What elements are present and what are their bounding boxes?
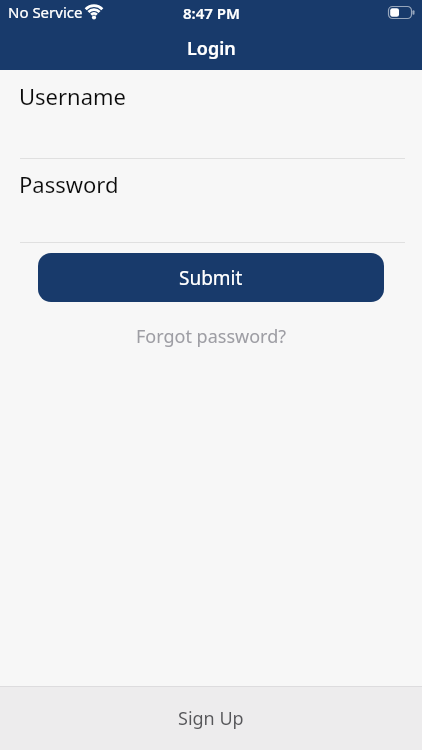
staticText: No Service — [8, 2, 83, 22]
staticText: Login — [187, 36, 236, 61]
button[interactable] — [0, 159, 422, 243]
staticText: Username — [19, 81, 127, 111]
staticText: Submit — [179, 265, 243, 291]
button[interactable]: Sign Up — [0, 686, 422, 750]
staticText: 8:47 PM — [183, 3, 240, 23]
staticText: Forgot password? — [136, 324, 287, 349]
button[interactable]: Forgot password? — [136, 324, 287, 349]
staticText: Sign Up — [178, 706, 244, 731]
button[interactable]: Submit — [38, 253, 384, 302]
staticText: Password — [19, 169, 119, 199]
button[interactable] — [0, 70, 422, 158]
